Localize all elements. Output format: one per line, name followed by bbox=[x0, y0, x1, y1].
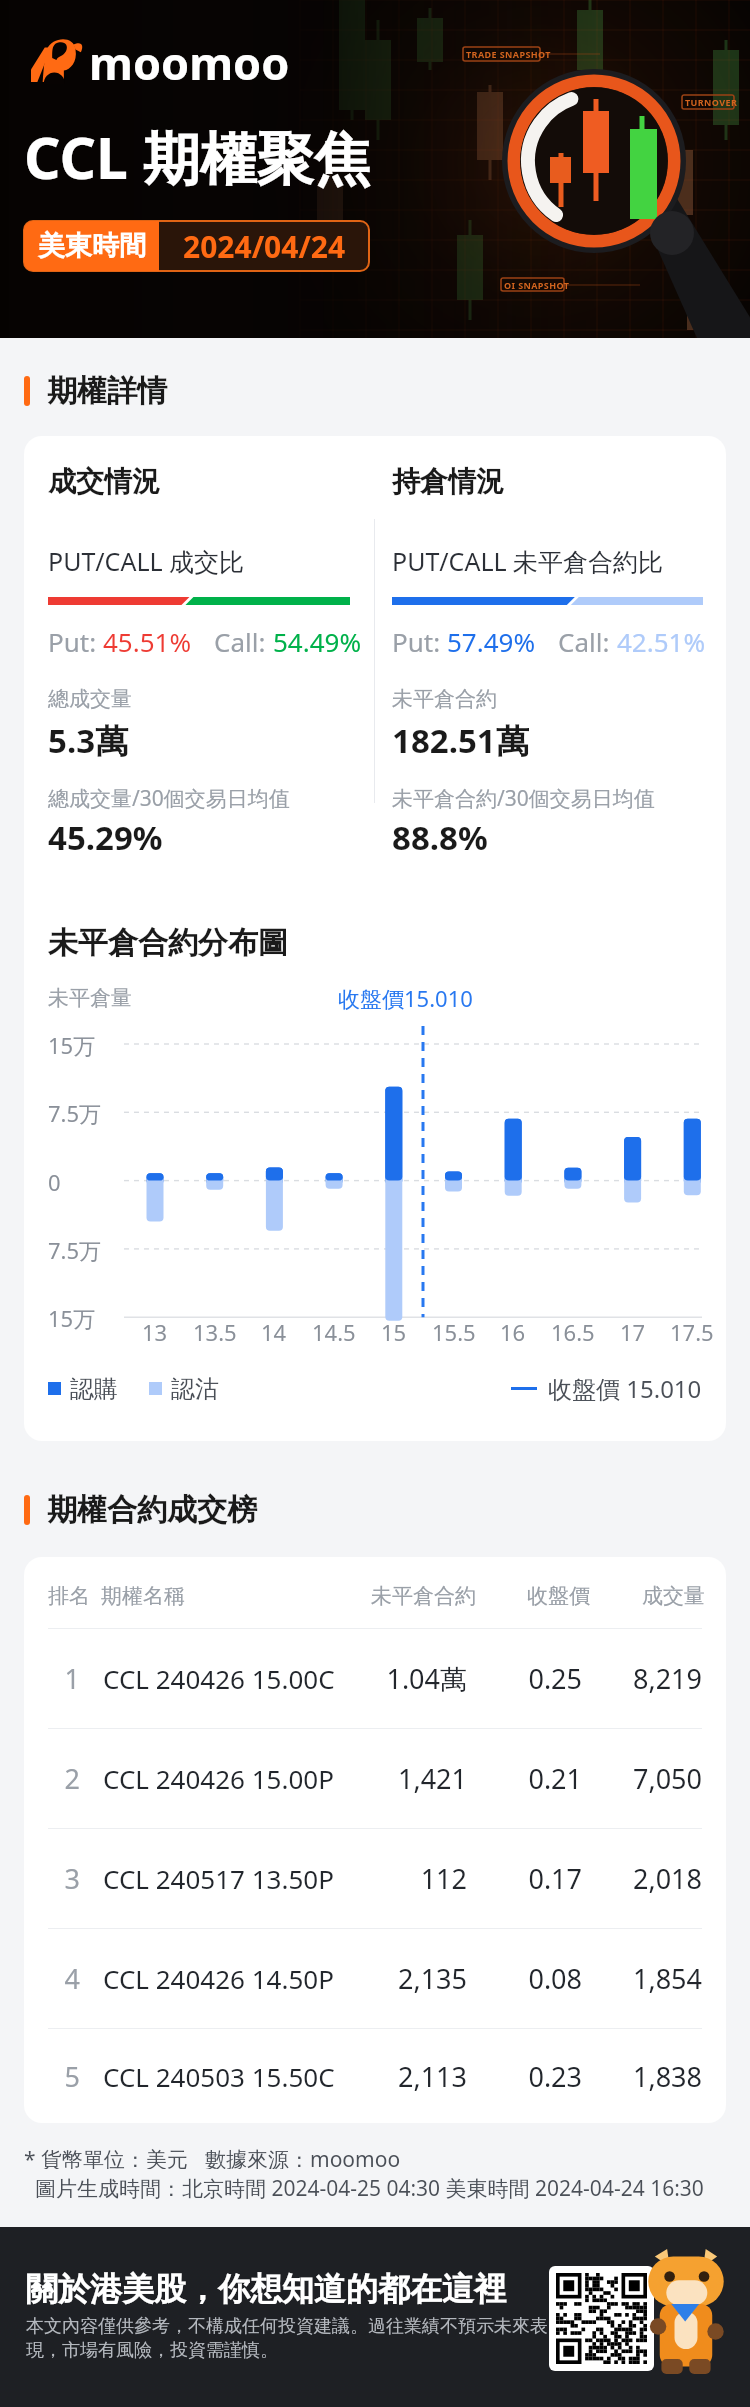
staticText: 15 bbox=[381, 1317, 407, 1347]
other: QR code to scan bbox=[549, 2266, 654, 2371]
staticText: CCL 240517 13.50P bbox=[103, 1861, 334, 1896]
staticText: 5.3萬 bbox=[48, 718, 129, 763]
staticText: * 貨幣單位：美元 bbox=[24, 2145, 189, 2169]
staticText: 112 bbox=[359, 1860, 467, 1897]
staticText: 57.49% bbox=[447, 624, 536, 659]
staticText: 14.5 bbox=[312, 1317, 356, 1347]
staticText: 成交情況 bbox=[48, 464, 160, 499]
staticText: 期權詳情 bbox=[47, 372, 167, 410]
staticText: 16.5 bbox=[551, 1317, 595, 1347]
staticText: CCL 240426 14.50P bbox=[103, 1961, 334, 1996]
staticText: 0.25 bbox=[467, 1660, 582, 1697]
staticText: PUT/CALL 成交比 bbox=[48, 544, 245, 578]
staticText: 未平倉合約分布圖 bbox=[48, 924, 288, 962]
staticText: 持倉情況 bbox=[392, 464, 504, 499]
staticText: 美東時間 bbox=[38, 229, 146, 263]
staticText: 13.5 bbox=[193, 1317, 237, 1347]
staticText: 收盤價15.010 bbox=[338, 983, 473, 1013]
staticText: 排名 bbox=[48, 1583, 90, 1609]
staticText: TRADE SNAPSHOT bbox=[466, 48, 551, 60]
staticText: TURNOVER bbox=[685, 96, 738, 108]
staticText: 未平倉量 bbox=[48, 985, 132, 1011]
staticText: 收盤價 bbox=[478, 1583, 590, 1609]
staticText: 45.29% bbox=[48, 815, 163, 860]
staticText: 54.49% bbox=[273, 624, 362, 659]
staticText: 14 bbox=[261, 1317, 287, 1347]
staticText: 未平倉合約 bbox=[366, 1583, 476, 1609]
staticText: 未平倉合約/30個交易日均值 bbox=[392, 784, 655, 813]
staticText: 總成交量/30個交易日均值 bbox=[48, 784, 290, 813]
staticText: 1 bbox=[48, 1660, 80, 1697]
staticText: 2,018 bbox=[582, 1860, 702, 1897]
staticText: 13 bbox=[142, 1317, 168, 1347]
staticText: 未平倉合約 bbox=[392, 686, 497, 712]
staticText: 42.51% bbox=[617, 624, 706, 659]
staticText: 7.5万 bbox=[48, 1098, 102, 1128]
staticText: 5 bbox=[48, 2058, 80, 2095]
staticText: 數據來源：moomoo bbox=[205, 2145, 401, 2169]
staticText: 7,050 bbox=[582, 1760, 702, 1797]
staticText: 4 bbox=[48, 1960, 80, 1997]
staticText: 關於港美股，你想知道的都在這裡 bbox=[26, 2269, 506, 2309]
staticText: 現，市場有風險，投資需謹慎。 bbox=[26, 2339, 278, 2362]
staticText: 收盤價 15.010 bbox=[548, 1372, 702, 1405]
button[interactable]: 2 bbox=[48, 1729, 702, 1828]
staticText: 2,113 bbox=[359, 2058, 467, 2095]
staticText: 1,421 bbox=[359, 1760, 467, 1797]
staticText: 3 bbox=[48, 1860, 80, 1897]
staticText: 15.5 bbox=[432, 1317, 476, 1347]
staticText: Call: bbox=[558, 624, 617, 659]
button[interactable]: 3 bbox=[48, 1829, 702, 1928]
button[interactable]: 4 bbox=[48, 1929, 702, 2028]
staticText: 15万 bbox=[48, 1303, 96, 1333]
staticText: 2024/04/24 bbox=[183, 226, 346, 267]
staticText: 本文內容僅供參考，不構成任何投資建議。過往業績不預示未來表 bbox=[26, 2315, 548, 2338]
staticText: 1,854 bbox=[582, 1960, 702, 1997]
staticText: 認沽 bbox=[171, 1374, 219, 1404]
staticText: 45.51% bbox=[103, 624, 192, 659]
staticText: 成交量 bbox=[591, 1583, 705, 1609]
staticText: 16 bbox=[500, 1317, 526, 1347]
staticText: 1,838 bbox=[582, 2058, 702, 2095]
staticText: 7.5万 bbox=[48, 1235, 102, 1265]
staticText: 15万 bbox=[48, 1030, 96, 1060]
staticText: 17.5 bbox=[670, 1317, 714, 1347]
staticText: 期權名稱 bbox=[101, 1583, 185, 1609]
staticText: OI SNAPSHOT bbox=[504, 279, 570, 291]
staticText: Put: bbox=[392, 624, 447, 659]
staticText: 認購 bbox=[70, 1374, 118, 1404]
staticText: 圖片生成時間：北京時間 2024-04-25 04:30 美東時間 2024-0… bbox=[24, 2174, 704, 2203]
staticText: 8,219 bbox=[582, 1660, 702, 1697]
staticText: 2,135 bbox=[359, 1960, 467, 1997]
button[interactable]: 1 bbox=[48, 1629, 702, 1728]
staticText: 1.04萬 bbox=[359, 1660, 467, 1697]
staticText: 0.08 bbox=[467, 1960, 582, 1997]
staticText: Put: bbox=[48, 624, 103, 659]
staticText: PUT/CALL 未平倉合約比 bbox=[392, 544, 664, 578]
button[interactable]: 5 bbox=[48, 2029, 702, 2123]
staticText: Call: bbox=[214, 624, 273, 659]
staticText: 0.23 bbox=[467, 2058, 582, 2095]
staticText: moomoo bbox=[89, 32, 290, 93]
staticText: CCL 期權聚焦 bbox=[24, 118, 371, 196]
staticText: 88.8% bbox=[392, 815, 488, 860]
staticText: 0.21 bbox=[467, 1760, 582, 1797]
staticText: 期權合約成交榜 bbox=[47, 1491, 257, 1529]
staticText: 0 bbox=[48, 1167, 61, 1197]
staticText: CCL 240503 15.50C bbox=[103, 2059, 335, 2094]
staticText: 17 bbox=[620, 1317, 646, 1347]
staticText: 總成交量 bbox=[48, 686, 132, 712]
staticText: CCL 240426 15.00C bbox=[103, 1661, 335, 1696]
staticText: 2 bbox=[48, 1760, 80, 1797]
staticText: 182.51萬 bbox=[392, 718, 529, 763]
staticText: 0.17 bbox=[467, 1860, 582, 1897]
staticText: CCL 240426 15.00P bbox=[103, 1761, 334, 1796]
